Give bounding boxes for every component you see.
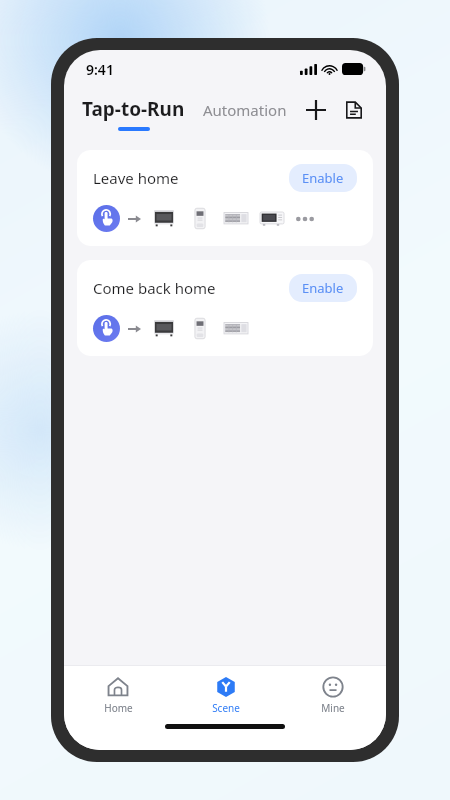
staticText: 9:41 xyxy=(86,60,114,79)
staticText: Mine xyxy=(321,701,345,715)
button[interactable]: Mine xyxy=(279,666,386,724)
staticText: Leave home xyxy=(93,168,289,188)
staticText: Home xyxy=(104,701,133,715)
staticText: Come back home xyxy=(93,278,289,298)
button[interactable]: Leave home xyxy=(77,150,373,246)
button[interactable]: Add scene xyxy=(300,94,332,126)
staticText: Enable xyxy=(302,169,344,187)
button[interactable]: Automation xyxy=(203,100,287,128)
staticText: Automation xyxy=(203,100,287,120)
button[interactable]: Scene xyxy=(172,666,279,724)
button[interactable]: Come back home xyxy=(77,260,373,356)
button[interactable]: Enable xyxy=(289,274,357,302)
button[interactable]: Home xyxy=(64,666,172,724)
staticText: Enable xyxy=(302,279,344,297)
button[interactable]: Tap-to-Run xyxy=(82,96,185,131)
button[interactable]: Logs xyxy=(338,94,370,126)
button[interactable]: Enable xyxy=(289,164,357,192)
staticText: Tap-to-Run xyxy=(82,96,185,122)
staticText: Scene xyxy=(212,701,240,715)
